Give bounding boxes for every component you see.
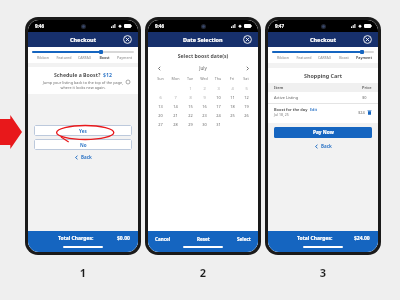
button[interactable]: 28 bbox=[168, 122, 183, 127]
staticText: Payment bbox=[117, 55, 132, 60]
button[interactable]: 8 bbox=[183, 95, 197, 100]
staticText: Fri bbox=[225, 76, 239, 81]
button[interactable]: No bbox=[34, 139, 132, 150]
button[interactable]: Payment bbox=[114, 55, 134, 60]
button[interactable]: Back bbox=[66, 152, 100, 162]
staticText: Checkout bbox=[310, 36, 337, 43]
button[interactable]: 20 bbox=[153, 113, 168, 118]
button[interactable]: Pay Now bbox=[274, 127, 372, 138]
button[interactable]: 7 bbox=[168, 95, 183, 100]
staticText: 3 bbox=[265, 265, 381, 280]
button[interactable]: 1 bbox=[183, 86, 197, 91]
button[interactable]: 2 bbox=[197, 86, 211, 91]
button[interactable]: Featured bbox=[293, 55, 314, 60]
staticText: 15 bbox=[188, 104, 193, 109]
staticText: 31 bbox=[216, 122, 221, 127]
button[interactable]: 5 bbox=[239, 86, 253, 91]
staticText: 22 bbox=[188, 113, 193, 118]
staticText: 19 bbox=[244, 104, 249, 109]
button[interactable]: Boost bbox=[334, 55, 354, 60]
button[interactable]: Yes bbox=[34, 125, 132, 136]
staticText: Mon bbox=[168, 76, 183, 81]
button[interactable]: 21 bbox=[168, 113, 183, 118]
staticText: No bbox=[80, 142, 87, 148]
staticText: 16 bbox=[202, 104, 207, 109]
staticText: $12 bbox=[103, 71, 112, 78]
button[interactable]: 14 bbox=[168, 104, 183, 109]
button[interactable]: 25 bbox=[225, 113, 239, 118]
staticText: $0 bbox=[362, 95, 367, 100]
button[interactable]: 16 bbox=[197, 104, 211, 109]
button[interactable]: Payment bbox=[354, 55, 374, 60]
button[interactable]: 17 bbox=[211, 104, 225, 109]
staticText: 8 bbox=[189, 95, 192, 100]
button[interactable]: 27 bbox=[153, 122, 168, 127]
staticText: 1 bbox=[25, 265, 141, 280]
button[interactable]: Close bbox=[243, 35, 252, 44]
button[interactable]: Reset bbox=[197, 236, 210, 242]
staticText: 9 bbox=[203, 95, 206, 100]
staticText: 3 bbox=[217, 86, 220, 91]
button[interactable]: CARFAX bbox=[314, 55, 334, 60]
button[interactable]: Select bbox=[237, 236, 251, 242]
staticText: $24.00 bbox=[354, 235, 370, 242]
button[interactable]: 29 bbox=[183, 122, 197, 127]
staticText: Active Listing bbox=[274, 95, 362, 100]
button[interactable]: Featured bbox=[53, 55, 74, 60]
button[interactable]: 12 bbox=[239, 95, 253, 100]
button[interactable]: Close bbox=[363, 35, 372, 44]
staticText: 9:46 bbox=[155, 23, 164, 29]
staticText: CARFAX bbox=[78, 55, 91, 60]
button[interactable]: 18 bbox=[225, 104, 239, 109]
staticText: Total Charges: bbox=[297, 235, 333, 242]
staticText: 1 bbox=[189, 86, 192, 91]
button[interactable]: 15 bbox=[183, 104, 197, 109]
button[interactable]: 11 bbox=[225, 95, 239, 100]
staticText: 17 bbox=[216, 104, 221, 109]
button[interactable]: CARFAX bbox=[74, 55, 94, 60]
staticText: 7 bbox=[174, 95, 177, 100]
staticText: July bbox=[163, 65, 243, 71]
staticText: 21 bbox=[173, 113, 178, 118]
button[interactable]: Ribbon bbox=[272, 55, 293, 60]
button[interactable]: 3 bbox=[211, 86, 225, 91]
staticText: Back bbox=[321, 143, 332, 149]
staticText: Select bbox=[237, 236, 251, 242]
button[interactable]: 4 bbox=[225, 86, 239, 91]
button[interactable]: 19 bbox=[239, 104, 253, 109]
staticText: Boost bbox=[339, 55, 349, 60]
staticText: Yes bbox=[79, 128, 87, 134]
button[interactable]: 24 bbox=[211, 113, 225, 118]
button[interactable]: Cancel bbox=[155, 236, 171, 242]
staticText: 4 bbox=[231, 86, 234, 91]
staticText: 24 bbox=[216, 113, 221, 118]
staticText: 2 bbox=[203, 86, 206, 91]
button[interactable]: Next month bbox=[243, 64, 251, 72]
button[interactable]: 31 bbox=[211, 122, 225, 127]
staticText: Sun bbox=[153, 76, 168, 81]
button[interactable]: 30 bbox=[197, 122, 211, 127]
button[interactable]: 22 bbox=[183, 113, 197, 118]
button[interactable]: 26 bbox=[239, 113, 253, 118]
button[interactable]: 6 bbox=[153, 95, 168, 100]
button[interactable]: 13 bbox=[153, 104, 168, 109]
button[interactable]: Ribbon bbox=[32, 55, 53, 60]
button[interactable]: Delete item bbox=[367, 110, 372, 115]
button[interactable]: Close bbox=[123, 35, 132, 44]
button[interactable]: Previous month bbox=[155, 64, 163, 72]
button[interactable]: 23 bbox=[197, 113, 211, 118]
button[interactable]: Edit bbox=[310, 107, 318, 112]
staticText: 28 bbox=[173, 122, 178, 127]
button[interactable]: 9 bbox=[197, 95, 211, 100]
staticText: Thu bbox=[211, 76, 225, 81]
staticText: 5 bbox=[245, 86, 248, 91]
staticText: 14 bbox=[173, 104, 178, 109]
button[interactable]: Boost bbox=[94, 55, 114, 60]
button[interactable]: Back bbox=[306, 141, 340, 151]
button[interactable]: 10 bbox=[211, 95, 225, 100]
staticText: 20 bbox=[158, 113, 163, 118]
staticText: Edit bbox=[310, 107, 318, 112]
staticText: 29 bbox=[188, 122, 193, 127]
staticText: 27 bbox=[158, 122, 163, 127]
staticText: Back bbox=[81, 154, 92, 160]
